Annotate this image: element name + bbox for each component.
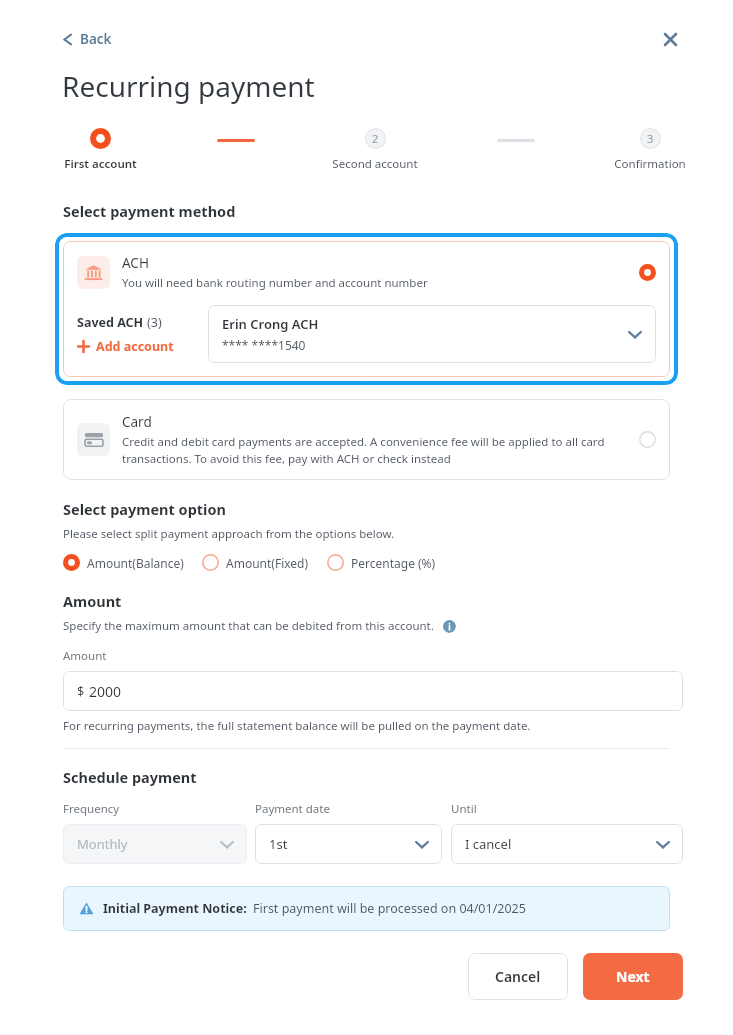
staticText: $ (77, 683, 85, 700)
button[interactable]: Card (63, 399, 670, 480)
staticText: 1st (269, 835, 415, 853)
staticText: First account (64, 156, 137, 171)
button[interactable]: Add account (77, 338, 174, 355)
staticText: Amount (63, 591, 122, 611)
button[interactable]: Monthly (63, 824, 247, 864)
button[interactable]: Back (58, 27, 116, 51)
button[interactable]: $ (63, 671, 683, 711)
staticText: Add account (96, 338, 174, 355)
staticText: (3) (147, 314, 162, 331)
staticText: Next (616, 967, 650, 986)
staticText: Payment date (255, 801, 330, 817)
staticText: Erin Crong ACH (222, 315, 319, 333)
button[interactable]: More information (442, 619, 456, 633)
staticText: ACH (122, 254, 149, 272)
button[interactable]: Close (657, 26, 683, 52)
staticText: For recurring payments, the full stateme… (63, 718, 531, 734)
staticText: Initial Payment Notice: (103, 900, 247, 917)
staticText: Cancel (495, 967, 541, 986)
staticText: 3 (647, 131, 654, 146)
staticText: Saved ACH (77, 314, 147, 331)
staticText: Back (80, 30, 112, 48)
button[interactable]: Amount(Balance) (63, 554, 184, 571)
staticText: Select payment option (63, 499, 226, 519)
staticText: Specify the maximum amount that can be d… (63, 618, 434, 634)
staticText: Card (122, 413, 152, 431)
staticText: Monthly (77, 835, 220, 853)
staticText: Credit and debit card payments are accep… (122, 434, 629, 466)
staticText: Amount(Balance) (87, 555, 184, 571)
staticText: You will need bank routing number and ac… (122, 275, 428, 291)
staticText: I cancel (465, 835, 656, 853)
button[interactable]: 1st (255, 824, 442, 864)
staticText: Percentage (%) (351, 555, 436, 571)
staticText: Until (451, 801, 477, 817)
staticText: 2 (372, 131, 379, 146)
button[interactable]: ACH (63, 241, 670, 377)
button[interactable]: Erin Crong ACH (208, 305, 656, 363)
staticText: 2000 (89, 682, 122, 701)
staticText: Schedule payment (63, 767, 197, 787)
staticText: Amount(Fixed) (226, 555, 309, 571)
button[interactable]: Amount(Fixed) (202, 554, 309, 571)
staticText: **** ****1540 (222, 337, 306, 353)
button[interactable]: I cancel (451, 824, 683, 864)
staticText: Frequency (63, 801, 120, 817)
button[interactable]: Percentage (%) (327, 554, 436, 571)
staticText: Recurring payment (62, 67, 315, 105)
staticText: Please select split payment approach fro… (63, 526, 395, 542)
staticText: Select payment method (63, 201, 236, 221)
staticText: First payment will be processed on 04/01… (253, 900, 526, 917)
button[interactable]: Next (583, 953, 683, 1000)
staticText: Second account (332, 156, 418, 171)
staticText: Confirmation (614, 156, 686, 171)
button[interactable]: Cancel (468, 953, 568, 1000)
staticText: Amount (63, 648, 107, 664)
